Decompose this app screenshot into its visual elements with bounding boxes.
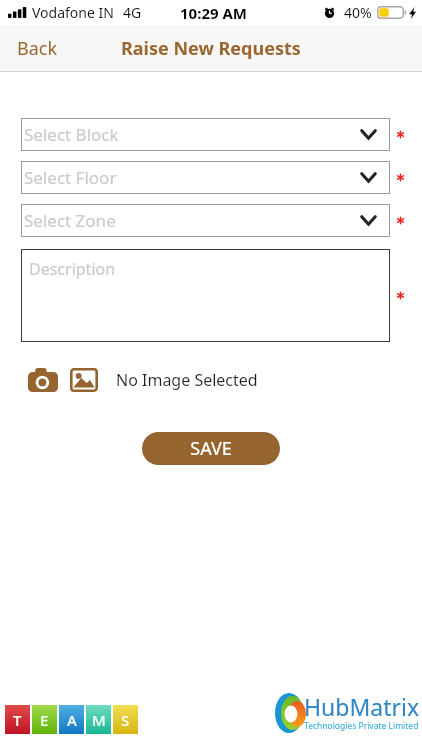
staticText: No Image Selected — [116, 369, 258, 391]
staticText: A — [67, 710, 77, 730]
staticText: Select Block — [24, 123, 360, 146]
button[interactable]: T — [5, 705, 138, 734]
staticText: Back — [17, 36, 58, 61]
button[interactable]: Pick image — [70, 368, 98, 392]
staticText: Select Floor — [24, 166, 360, 189]
button[interactable]: Take photo — [28, 368, 58, 392]
staticText: HubMatrix — [304, 691, 420, 722]
staticText: Description — [29, 258, 116, 280]
staticText: Vodafone IN — [32, 3, 114, 22]
button[interactable]: Select Zone — [21, 204, 390, 237]
staticText: S — [121, 710, 130, 730]
staticText: 40% — [344, 3, 372, 22]
staticText: T — [13, 710, 22, 730]
staticText: E — [40, 710, 49, 730]
staticText: Raise New Requests — [121, 36, 301, 61]
staticText: Select Zone — [24, 209, 360, 232]
button[interactable]: Select Floor — [21, 161, 390, 194]
button[interactable]: Back — [17, 36, 58, 61]
staticText: 4G — [123, 3, 142, 22]
staticText: M — [92, 710, 106, 730]
staticText: 10:29 AM — [180, 3, 247, 23]
staticText: Technologies Private Limited — [304, 720, 419, 732]
button[interactable]: SAVE — [142, 432, 280, 465]
button[interactable]: Select Block — [21, 118, 390, 151]
button[interactable]: Description — [21, 249, 390, 342]
staticText: SAVE — [190, 436, 232, 461]
